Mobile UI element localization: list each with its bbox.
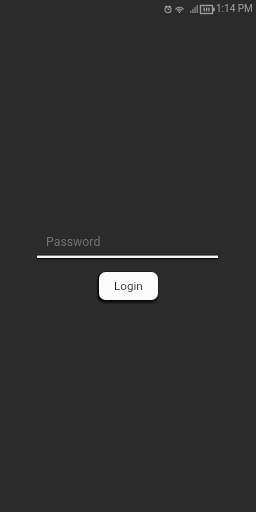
other: Battery xyxy=(200,5,215,14)
button[interactable]: Password field xyxy=(37,228,218,259)
other: Wi-Fi xyxy=(175,5,184,14)
staticText: Login xyxy=(114,279,143,293)
staticText: Password xyxy=(46,235,101,249)
other: Mobile signal xyxy=(190,5,198,13)
other: Alarm set xyxy=(164,5,172,13)
button[interactable]: Login xyxy=(99,272,158,300)
staticText: 1:14 PM xyxy=(216,3,253,15)
